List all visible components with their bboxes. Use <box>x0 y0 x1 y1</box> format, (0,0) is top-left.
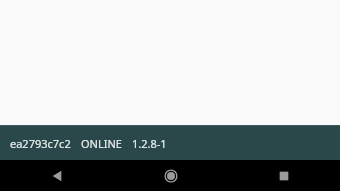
staticText: ONLINE <box>81 136 122 151</box>
button[interactable]: ea2793c7c2 <box>0 125 340 160</box>
button[interactable]: Back <box>0 160 114 191</box>
staticText: 1.2.8-1 <box>132 136 167 151</box>
button[interactable]: Recent apps <box>227 160 340 191</box>
button[interactable]: Home <box>114 160 227 191</box>
staticText: ea2793c7c2 <box>10 136 71 151</box>
